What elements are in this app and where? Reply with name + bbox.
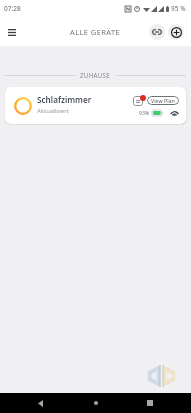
button[interactable]: Add device [168,24,184,40]
button[interactable]: Plan details [133,96,143,106]
staticText: ALLE GERÄTE [70,27,121,37]
staticText: 95 % [171,4,186,13]
button[interactable]: Link account [149,24,165,40]
staticText: Schlafzimmer [37,94,92,105]
button[interactable]: Recent apps [140,393,160,413]
staticText: 93% [139,109,150,116]
button[interactable]: Menu [2,22,22,42]
button[interactable]: Schlafzimmer [5,87,186,124]
staticText: Aktualisiert [37,107,69,115]
staticText: View Plan [151,97,175,104]
button[interactable]: Home [86,393,106,413]
staticText: 07:28 [4,4,21,13]
staticText: ZUHAUSE [80,71,111,79]
button[interactable]: View Plan [147,96,179,105]
button[interactable]: Back [30,393,50,413]
